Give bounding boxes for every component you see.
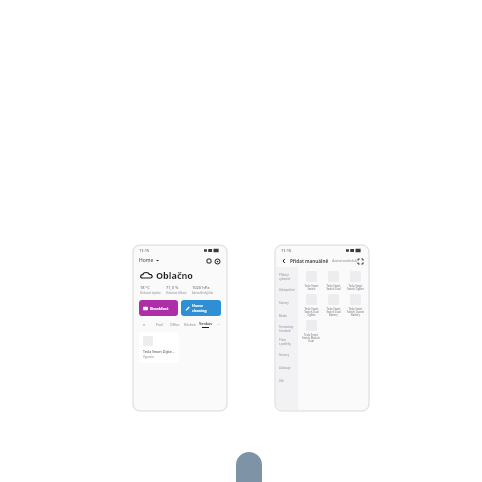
staticText: Práce s potřeby	[279, 338, 291, 345]
staticText: Přidaný vybavení	[279, 273, 291, 280]
button[interactable]: Dile	[279, 374, 295, 387]
staticText: 71,0 %	[166, 285, 179, 290]
staticText: Zabezpečeni	[279, 288, 295, 292]
button[interactable]: Oblačno	[140, 269, 220, 281]
button[interactable]: Settings	[213, 257, 221, 265]
button[interactable]: Tesla Smart Switch Dual Battery	[322, 292, 344, 318]
button[interactable]: Přidaný vybavení	[279, 270, 295, 283]
staticText: Tesla Smart Zigbe…	[143, 349, 175, 354]
staticText: Venkov	[199, 321, 213, 326]
staticText: Dile	[279, 379, 284, 383]
button[interactable]: Termostaty hl.vzduch	[279, 322, 295, 335]
button[interactable]: Kamery	[279, 296, 295, 309]
button[interactable]: Tesla Smart Switch ZigBee	[344, 269, 366, 292]
staticText: Vypnuto	[143, 355, 154, 359]
staticText: cleaning	[192, 308, 207, 313]
staticText: Venkovní teplota	[140, 291, 161, 295]
button[interactable]: Tesla Smart Switch Module Dual	[300, 318, 322, 344]
button[interactable]: Senzory	[279, 348, 295, 361]
staticText: House	[192, 303, 203, 308]
staticText: Přidat manuálně	[290, 258, 329, 264]
staticText: Venkovní vlhkost	[166, 291, 187, 295]
staticText: Tesla Smart Switch Quartz Battery	[347, 307, 364, 316]
button[interactable]: More	[214, 322, 223, 327]
staticText: Oblačno	[156, 269, 193, 281]
button[interactable]: Back	[280, 257, 288, 265]
staticText: Senzory	[279, 353, 290, 357]
staticText: Tesla Smart Switch Dual Battery	[326, 307, 341, 316]
button[interactable]: Přidat manuálně	[290, 258, 329, 264]
button[interactable]: n	[137, 322, 152, 327]
staticText: Tesla Smart Switch	[304, 284, 319, 290]
button[interactable]: Tesla Smart Switch Quartz Battery	[344, 292, 366, 318]
staticText: Kitchen	[184, 322, 196, 327]
button[interactable]: Breakfast	[139, 300, 178, 316]
button[interactable]: Zavlazuje	[279, 361, 295, 374]
staticText: 11:15	[139, 248, 150, 253]
staticText: Kamery	[279, 301, 289, 305]
staticText: Tesla Smart Switch Dual	[326, 284, 341, 290]
staticText: Tesla Smart Switch Dual ZigBee	[304, 307, 319, 316]
staticText: Atmosférický tlak	[192, 291, 213, 295]
staticText: 18 °C	[140, 285, 150, 290]
button[interactable]: Home	[139, 255, 221, 266]
staticText: 1020 hPa	[192, 285, 210, 290]
button[interactable]: Práce s potřeby	[279, 335, 295, 348]
staticText: 11:15	[281, 248, 292, 253]
button[interactable]: Automatická	[332, 258, 357, 264]
button[interactable]: Zabezpečeni	[279, 283, 295, 296]
staticText: Home	[139, 257, 154, 264]
staticText: ···	[217, 322, 220, 327]
button[interactable]: Devices	[205, 257, 213, 265]
button[interactable]: Media	[279, 309, 295, 322]
staticText: Automatická	[332, 258, 357, 264]
staticText: Tesla Smart Switch ZigBee	[347, 284, 364, 290]
button[interactable]: Pool	[152, 322, 167, 327]
staticText: Media	[279, 314, 287, 318]
staticText: Tesla Smart Switch Module Dual	[302, 333, 320, 342]
staticText: Termostaty hl.vzduch	[279, 325, 294, 332]
staticText: n	[143, 322, 146, 327]
button[interactable]: Tesla Smart Zigbe…	[139, 332, 179, 363]
staticText: Zavlazuje	[279, 366, 291, 370]
button[interactable]: Scan	[357, 257, 364, 266]
staticText: Pool	[156, 322, 164, 327]
button[interactable]: Office	[167, 322, 182, 327]
button[interactable]: Tesla Smart Switch Dual	[322, 269, 344, 292]
button[interactable]: House	[181, 300, 221, 316]
button[interactable]: Kitchen	[182, 322, 197, 327]
button[interactable]: Tesla Smart Switch	[300, 269, 322, 292]
button[interactable]: Venkov	[197, 321, 214, 328]
button[interactable]: Tesla Smart Switch Dual ZigBee	[300, 292, 322, 318]
staticText: Office	[170, 322, 180, 327]
staticText: Breakfast	[150, 306, 169, 311]
